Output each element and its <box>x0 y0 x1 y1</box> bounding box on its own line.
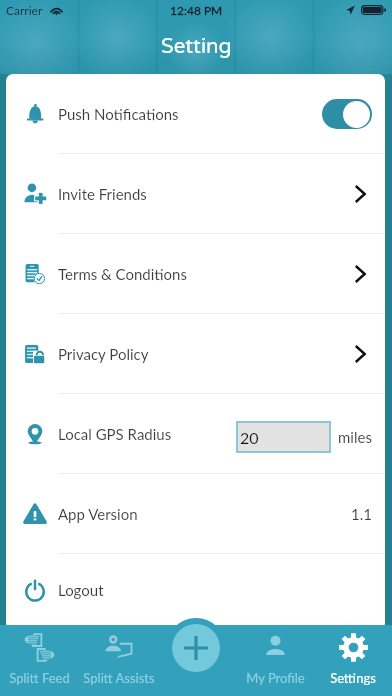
button[interactable]: Invite Friends <box>6 154 385 234</box>
staticText: Splitt Feed <box>9 670 70 686</box>
staticText: Setting <box>161 34 232 59</box>
staticText: 20 <box>240 428 259 447</box>
staticText: miles <box>338 428 372 446</box>
button[interactable]: Terms & Conditions <box>6 234 385 314</box>
staticText: Local GPS Radius <box>58 425 172 443</box>
staticText: My Profile <box>246 670 305 686</box>
staticText: 1.1 <box>351 505 372 523</box>
button[interactable]: Privacy Policy <box>6 314 385 394</box>
staticText: Carrier <box>6 3 43 17</box>
button[interactable]: My Profile <box>236 625 314 696</box>
button[interactable]: Open <box>342 336 378 372</box>
staticText: Privacy Policy <box>58 345 149 363</box>
button[interactable]: 20 <box>236 421 331 453</box>
button[interactable]: Push notifications <box>322 99 372 129</box>
staticText: App Version <box>58 505 138 523</box>
button[interactable]: Add <box>172 624 220 672</box>
button[interactable]: Local GPS Radius <box>6 394 385 474</box>
staticText: Settings <box>330 670 376 686</box>
button[interactable]: Settings <box>314 625 392 696</box>
button[interactable]: Splitt Assists <box>79 625 158 696</box>
staticText: 12:48 PM <box>170 3 223 17</box>
staticText: Splitt Assists <box>83 670 155 686</box>
button[interactable]: Splitt Feed <box>0 625 79 696</box>
staticText: Push Notifications <box>58 105 179 123</box>
button[interactable]: Open <box>342 176 378 212</box>
button[interactable]: App Version <box>6 474 385 554</box>
staticText: Invite Friends <box>58 185 147 203</box>
staticText: Terms & Conditions <box>58 265 187 283</box>
button[interactable]: Open <box>342 256 378 292</box>
staticText: Logout <box>58 581 104 599</box>
button[interactable]: Logout <box>6 554 385 625</box>
button[interactable]: Push Notifications <box>6 74 385 154</box>
